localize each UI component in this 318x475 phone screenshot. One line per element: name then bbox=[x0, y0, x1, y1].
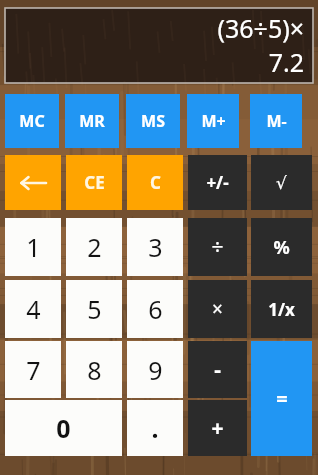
button[interactable]: 7 bbox=[5, 341, 61, 398]
staticText: (36÷5)× bbox=[217, 11, 304, 45]
staticText: . bbox=[151, 411, 159, 445]
staticText: 3 bbox=[148, 230, 163, 264]
button[interactable]: Backspace bbox=[5, 155, 61, 210]
staticText: = bbox=[276, 385, 288, 412]
staticText: √ bbox=[276, 173, 287, 193]
button[interactable]: M+ bbox=[187, 94, 239, 148]
staticText: ÷ bbox=[211, 233, 224, 262]
staticText: 9 bbox=[148, 353, 163, 387]
button[interactable]: MS bbox=[126, 94, 180, 148]
button[interactable]: 9 bbox=[127, 341, 183, 398]
staticText: - bbox=[214, 355, 221, 384]
staticText: MS bbox=[141, 110, 165, 132]
button[interactable]: MC bbox=[5, 94, 59, 148]
button[interactable]: C bbox=[127, 155, 183, 210]
button[interactable]: 6 bbox=[127, 280, 183, 338]
button[interactable]: 1 bbox=[5, 218, 61, 276]
staticText: 8 bbox=[87, 353, 102, 387]
button[interactable]: + bbox=[188, 400, 247, 456]
staticText: MC bbox=[19, 110, 45, 132]
button[interactable]: 2 bbox=[66, 218, 122, 276]
button[interactable]: ÷ bbox=[188, 218, 247, 276]
staticText: M+ bbox=[201, 110, 226, 132]
button[interactable]: - bbox=[188, 341, 247, 398]
staticText: × bbox=[212, 296, 223, 322]
staticText: 7 bbox=[26, 353, 41, 387]
staticText: 7.2 bbox=[268, 45, 304, 79]
button[interactable]: 3 bbox=[127, 218, 183, 276]
staticText: MR bbox=[79, 110, 105, 132]
button[interactable]: 5 bbox=[66, 280, 122, 338]
button[interactable]: × bbox=[188, 280, 247, 338]
staticText: % bbox=[273, 235, 290, 260]
button[interactable]: 0 bbox=[5, 400, 122, 456]
button[interactable]: +/- bbox=[188, 155, 247, 210]
button[interactable]: M- bbox=[250, 94, 302, 148]
staticText: CE bbox=[84, 171, 105, 194]
button[interactable]: 4 bbox=[5, 280, 61, 338]
staticText: 1/x bbox=[268, 298, 295, 321]
staticText: +/- bbox=[206, 171, 229, 194]
staticText: 4 bbox=[26, 292, 41, 326]
staticText: 6 bbox=[148, 292, 163, 326]
button[interactable]: . bbox=[127, 400, 183, 456]
button[interactable]: = bbox=[251, 341, 312, 456]
button[interactable]: % bbox=[251, 218, 312, 276]
staticText: 5 bbox=[87, 292, 102, 326]
staticText: 1 bbox=[26, 230, 41, 264]
staticText: 2 bbox=[87, 230, 102, 264]
button[interactable]: CE bbox=[66, 155, 122, 210]
button[interactable]: 1/x bbox=[251, 280, 312, 338]
staticText: M- bbox=[266, 110, 287, 132]
button[interactable]: √ bbox=[251, 155, 312, 210]
button[interactable]: 8 bbox=[66, 341, 122, 398]
staticText: C bbox=[150, 171, 161, 194]
staticText: 0 bbox=[56, 411, 71, 445]
button[interactable]: MR bbox=[65, 94, 119, 148]
staticText: + bbox=[211, 414, 224, 443]
